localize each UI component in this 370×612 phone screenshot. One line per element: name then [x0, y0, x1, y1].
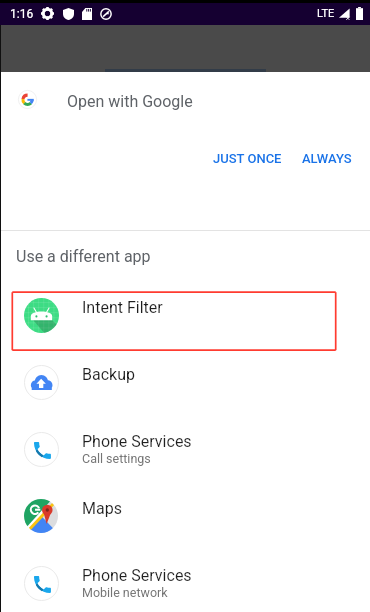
button[interactable]: Intent Filter	[0, 281, 370, 348]
staticText: Use a different app	[16, 247, 151, 266]
staticText: Mobile network	[82, 585, 168, 600]
button[interactable]: Maps	[0, 482, 370, 549]
staticText: Maps	[82, 499, 122, 518]
button[interactable]: Backup	[0, 348, 370, 415]
button[interactable]: Phone Services	[0, 415, 370, 482]
staticText: Call settings	[82, 451, 151, 466]
staticText: Phone Services	[82, 566, 192, 585]
staticText: Intent Filter	[82, 298, 163, 317]
button[interactable]: ALWAYS	[294, 145, 360, 172]
staticText: JUST ONCE	[213, 151, 282, 166]
button[interactable]: JUST ONCE	[205, 145, 290, 172]
staticText: 1:16	[10, 7, 34, 21]
staticText: LTE	[317, 7, 335, 20]
staticText: Phone Services	[82, 432, 192, 451]
staticText: Backup	[82, 365, 135, 384]
staticText: Open with Google	[67, 92, 193, 111]
button[interactable]: Phone Services	[0, 549, 370, 612]
staticText: ALWAYS	[302, 151, 352, 166]
